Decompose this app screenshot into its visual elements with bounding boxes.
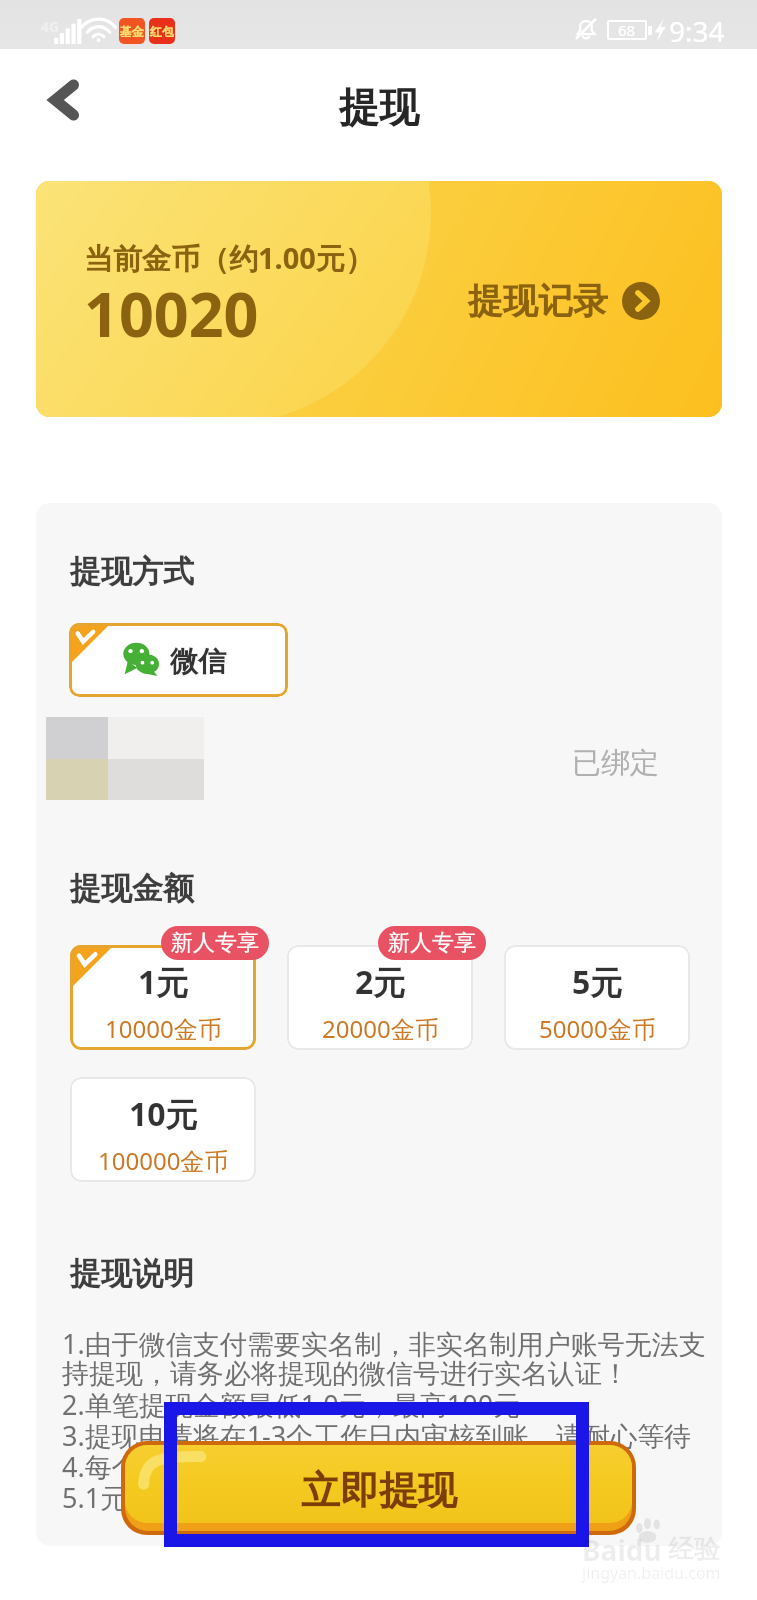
staticText: 2元 [355,960,406,1004]
staticText: 20000金币 [322,1012,439,1045]
button[interactable]: 提现记录 [468,279,660,323]
staticText: 100000金币 [98,1144,229,1177]
button[interactable]: Back [30,66,98,134]
staticText: 50000金币 [539,1012,656,1045]
staticText: 1元 [138,960,189,1004]
staticText: 10020 [84,272,259,355]
button[interactable]: 当前金币（约1.00元） [36,181,722,417]
staticText: 68 [618,20,636,40]
staticText: 立即提现 [301,1466,457,1515]
staticText: 当前金币（约1.00元） [84,238,374,278]
button[interactable]: 微信 [69,623,288,697]
staticText: 9:34 [669,12,725,50]
staticText: 微信 [170,644,226,679]
staticText: 1.由于微信支付需要实名制，非实名制用户账号无法支持提现，请务必将提现的微信号进… [62,1325,722,1516]
button[interactable]: 1元 [70,945,256,1050]
staticText: 10000金币 [105,1012,222,1045]
staticText: 新人专享 [388,929,476,957]
staticText: 基金 [120,24,144,39]
button[interactable]: 立即提现 [121,1441,636,1535]
staticText: jingyan.baidu.com [582,1562,721,1584]
staticText: 提现金额 [70,869,194,908]
staticText: Baidu [582,1531,662,1569]
staticText: 提现记录 [468,279,608,323]
staticText: 经验 [668,1533,720,1566]
staticText: 提现 [339,82,419,132]
button[interactable]: 2元 [287,945,473,1050]
staticText: 10元 [129,1092,198,1136]
staticText: 4G [41,17,60,36]
staticText: 提现方式 [70,552,194,591]
button[interactable]: 10元 [70,1077,256,1182]
staticText: 新人专享 [171,929,259,957]
button[interactable]: 5元 [504,945,690,1050]
staticText: 已绑定 [572,745,659,782]
staticText: 红包 [150,24,174,39]
staticText: 提现说明 [70,1254,194,1293]
staticText: 5元 [572,960,623,1004]
